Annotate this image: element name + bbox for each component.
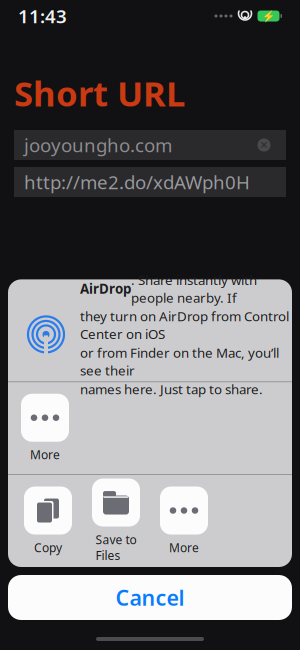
staticText: http://me2.do/xdAWph0H: [24, 170, 250, 194]
staticText: 11:43: [18, 4, 67, 28]
staticText: More: [30, 447, 60, 463]
staticText: ⚡: [262, 10, 275, 22]
staticText: Short URL: [14, 70, 185, 116]
button[interactable]: Clear text: [252, 133, 276, 157]
button[interactable]: Cancel: [8, 575, 292, 620]
staticText: they turn on AirDrop from Control Center…: [80, 307, 289, 343]
staticText: or from Finder on the Mac, you’ll see th…: [80, 344, 279, 379]
staticText: Copy: [34, 539, 62, 555]
staticText: ✕: [259, 139, 268, 151]
staticText: . Share instantly with people nearby. If: [131, 271, 257, 306]
staticText: Cancel: [115, 583, 184, 612]
button[interactable]: More: [150, 486, 218, 555]
staticText: AirDrop: [80, 280, 131, 297]
staticText: jooyoungho.com: [24, 133, 172, 157]
staticText: Save to Files: [95, 532, 136, 563]
button[interactable]: More: [14, 394, 76, 463]
staticText: names here. Just tap to share.: [80, 380, 263, 398]
staticText: More: [169, 539, 199, 555]
button[interactable]: Save to Files: [82, 479, 150, 563]
button[interactable]: Copy: [14, 486, 82, 555]
